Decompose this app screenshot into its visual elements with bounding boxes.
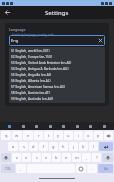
staticText: e [27,133,30,138]
button[interactable]: 52 English, Europe (en-150) [11,54,103,60]
button[interactable]: Key option 3 [47,123,54,130]
button[interactable]: a [8,142,18,151]
staticText: n [65,155,68,160]
button[interactable]: g [49,142,58,151]
button[interactable]: 57 English, American Samoa (en-AS) [11,84,103,90]
button[interactable]: x [22,153,31,162]
staticText: k [82,144,85,149]
button[interactable]: Eng [9,35,105,46]
staticText: 51 English, world (en-001) [11,49,50,53]
staticText: s [23,144,25,149]
staticText: c [36,155,38,160]
staticText: b [55,155,58,160]
button[interactable]: k [79,142,88,151]
button[interactable]: Key option 1 [20,123,27,130]
button[interactable]: m [72,153,81,162]
button[interactable]: b [52,153,61,162]
button[interactable]: 55 English, Anguilla (en-AI) [11,72,103,78]
staticText: 56 English, Albania (en-AL) [11,79,51,83]
staticText: Language [9,27,26,32]
staticText: u [67,133,70,138]
staticText: 54 English, Antigua & Barbuda (en-AG) [11,67,69,71]
staticText: o [87,133,90,138]
button[interactable]: 58 English, Austria (en-AT) [11,90,103,96]
button[interactable]: comma [16,164,26,173]
button[interactable]: Key option 2 [33,123,40,130]
staticText: 58 English, Austria (en-AT) [11,91,50,95]
button[interactable]: emoji [76,164,86,173]
staticText: d [32,144,35,149]
button[interactable]: h [59,142,68,151]
staticText: a [12,144,15,149]
button[interactable]: c [32,153,41,162]
button[interactable]: e [23,131,33,140]
button[interactable]: enter [99,142,113,151]
button[interactable]: , [82,153,91,162]
button[interactable]: y [54,131,63,140]
staticText: Eng [11,38,19,43]
staticText: q [5,133,8,138]
button[interactable]: Key option 7 [101,123,108,130]
button[interactable]: o [84,131,93,140]
button[interactable]: r [34,131,43,140]
button[interactable]: Key option 6 [87,123,94,130]
staticText: 55 English, Anguilla (en-AI) [11,73,51,77]
staticText: , [20,166,22,171]
staticText: g [52,144,55,149]
button[interactable]: i [74,131,83,140]
button[interactable]: u [64,131,73,140]
button[interactable]: period [87,164,97,173]
staticText: m [75,155,79,160]
staticText: v [45,155,48,160]
button[interactable]: v [42,153,51,162]
staticText: z [16,155,18,160]
button[interactable]: shift [102,153,113,162]
staticText: Settings [45,9,69,17]
button[interactable]: s [19,142,28,151]
button[interactable]: ?123 [1,164,15,173]
button[interactable]: del [104,131,113,140]
staticText: x [25,155,28,160]
button[interactable]: l [89,142,98,151]
button[interactable]: Key option 4 [60,123,67,130]
button[interactable]: 54 English, Antigua & Barbuda (en-AG) [11,66,103,72]
staticText: i [78,133,80,138]
button[interactable]: w [12,131,22,140]
button[interactable]: q [1,131,11,140]
staticText: r [38,133,40,138]
button[interactable]: f [39,142,48,151]
button[interactable]: shift [1,153,11,162]
button[interactable]: j [69,142,78,151]
button[interactable]: search [98,164,113,173]
button[interactable]: d [29,142,38,151]
button[interactable]: t [44,131,53,140]
staticText: 53 English, United Arab Emirates (en-AE) [11,61,72,65]
staticText: 59 English, Australia (en-AU) [11,97,54,101]
button[interactable]: Key option 5 [74,123,81,130]
button[interactable]: z [12,153,21,162]
button[interactable]: 53 English, United Arab Emirates (en-AE) [11,60,103,66]
button[interactable]: Back [3,8,12,17]
staticText: 52 English, Europe (en-150) [11,55,52,59]
button[interactable]: 51 English, world (en-001) [11,48,103,54]
button[interactable]: 59 English, Australia (en-AU) [11,96,103,102]
staticText: l [93,144,95,149]
staticText: p [97,133,100,138]
staticText: Search by language, country, code [12,33,54,37]
staticText: h [62,144,65,149]
staticText: . [91,166,93,171]
button[interactable]: n [62,153,71,162]
staticText: ? [96,155,98,160]
button[interactable]: Key option 0 [6,123,13,130]
staticText: 57 English, American Samoa (en-AS) [11,85,65,89]
button[interactable]: 56 English, Albania (en-AL) [11,78,103,84]
staticText: f [43,144,45,149]
staticText: Go [104,167,108,171]
button[interactable]: ? [92,153,101,162]
staticText: ?123 [5,167,11,171]
staticText: j [73,144,75,149]
staticText: t [48,133,50,138]
button[interactable]: Clear [98,38,103,43]
button[interactable]: p [94,131,103,140]
